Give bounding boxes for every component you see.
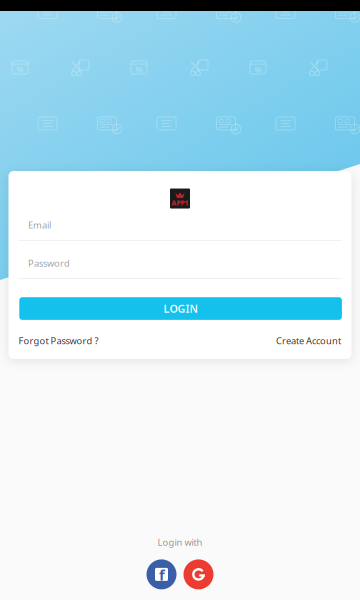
staticText: Forgot Password ? [18, 334, 98, 347]
staticText: Login with [157, 536, 202, 548]
button[interactable]: LOGIN [19, 297, 342, 320]
staticText: Password [28, 257, 70, 269]
staticText: APP1 [171, 198, 188, 207]
button[interactable]: Login with Google [183, 559, 213, 589]
button[interactable]: Forgot Password ? [18, 334, 98, 347]
staticText: f [159, 565, 165, 585]
staticText: Email [28, 219, 51, 231]
button[interactable]: Login with Facebook [146, 559, 176, 589]
staticText: LOGIN [164, 301, 198, 316]
staticText: % [135, 64, 142, 75]
button[interactable]: Create Account [276, 334, 341, 347]
staticText: % [16, 64, 23, 75]
staticText: Create Account [276, 334, 341, 347]
staticText: % [254, 64, 261, 75]
